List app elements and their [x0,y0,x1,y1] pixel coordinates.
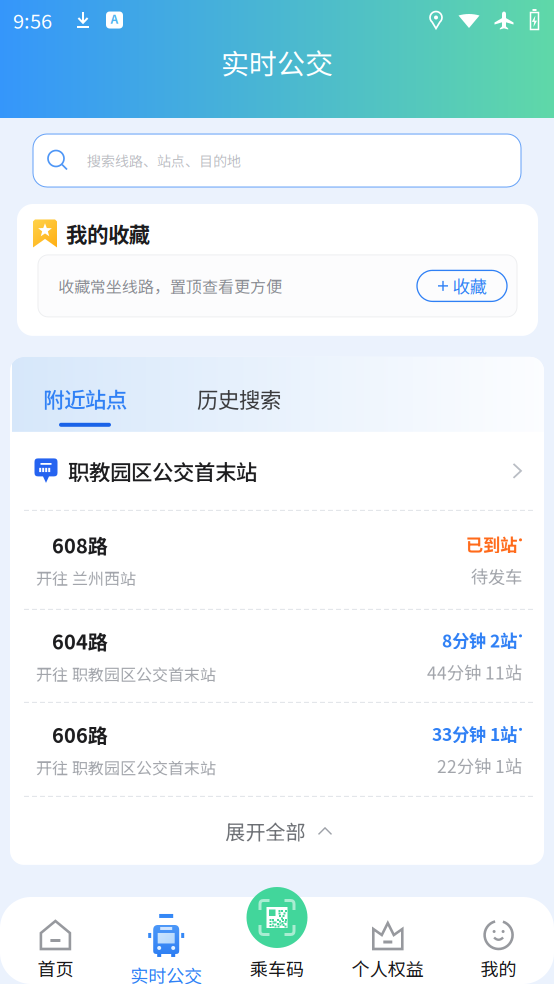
button[interactable]: 搜索线路、站点、目的地 [0,134,554,187]
button[interactable]: 收藏 [417,270,507,301]
button[interactable]: 个人权益 [332,897,443,984]
staticText: 8分钟 2站 [442,627,517,652]
staticText: 开往 兰州西站 [36,566,136,589]
staticText: 收藏 [452,273,486,298]
staticText: 我的 [481,955,517,981]
staticText: 附近站点 [43,383,127,414]
staticText: 个人权益 [352,955,424,981]
staticText: 实时公交 [221,42,333,82]
staticText: 33分钟 1站 [432,721,517,746]
button[interactable]: 展开全部 [12,797,546,865]
staticText: 22分钟 1站 [437,753,522,778]
button[interactable]: 历史搜索 [197,357,281,432]
button[interactable]: 608路 [12,511,546,609]
button[interactable]: 首页 [0,897,111,984]
staticText: 职教园区公交首末站 [68,455,257,486]
button[interactable]: 附近站点 [43,357,127,432]
button[interactable]: 职教园区公交首末站 [12,432,546,510]
button[interactable]: 604路 [12,610,546,702]
staticText: 实时公交 [130,962,202,984]
staticText: 9:56 [13,5,52,34]
staticText: 608路 [52,530,108,559]
staticText: 待发车 [471,563,522,588]
staticText: 历史搜索 [197,383,281,414]
staticText: 44分钟 11站 [427,659,522,684]
staticText: 开往 职教园区公交首末站 [36,756,216,779]
button[interactable]: 乘车码 [246,887,307,948]
staticText: 606路 [52,720,108,749]
staticText: 搜索线路、站点、目的地 [87,150,241,171]
staticText: A [110,10,118,27]
staticText: 604路 [52,626,108,655]
staticText: 收藏常坐线路，置顶查看更方便 [58,274,282,297]
button[interactable]: 我的 [443,897,554,984]
staticText: 已到站 [466,531,517,556]
button[interactable]: 606路 [12,703,546,796]
staticText: 乘车码 [250,955,304,981]
staticText: 我的收藏 [66,218,150,249]
staticText: 开往 职教园区公交首末站 [36,662,216,685]
button[interactable]: 乘车码 [222,897,332,984]
button[interactable]: 实时公交 [111,897,222,984]
staticText: 展开全部 [225,816,305,845]
staticText: 首页 [37,955,73,981]
